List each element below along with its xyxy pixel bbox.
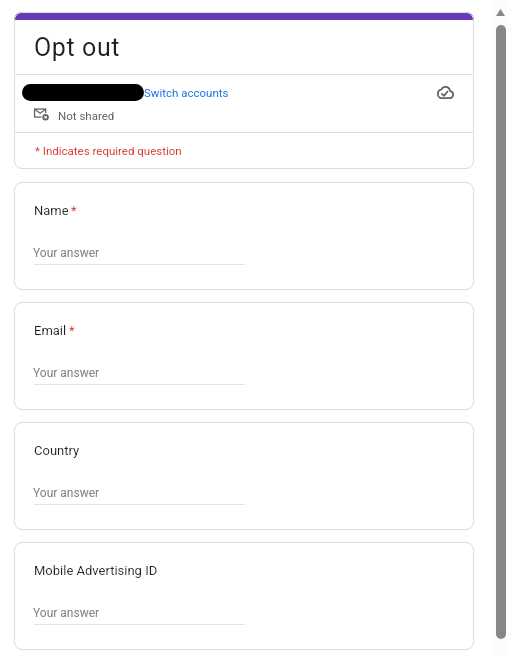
- staticText: *: [69, 323, 75, 338]
- button[interactable]: Scroll up: [493, 4, 508, 20]
- button[interactable]: Saved to Drive: [429, 76, 461, 108]
- button[interactable]: Email: [14, 302, 474, 410]
- staticText: Your answer: [33, 486, 100, 500]
- staticText: Your answer: [33, 606, 100, 620]
- button[interactable]: Your answer: [33, 234, 245, 265]
- staticText: *: [71, 203, 77, 218]
- staticText: Opt out: [34, 33, 121, 62]
- other: Scroll position: [496, 25, 506, 639]
- button[interactable]: Name: [14, 182, 474, 290]
- staticText: Switch accounts: [144, 86, 229, 99]
- staticText: * Indicates required question: [35, 144, 182, 157]
- staticText: Not shared: [58, 109, 115, 122]
- button[interactable]: Switch accounts: [144, 84, 229, 101]
- button[interactable]: Your answer: [33, 474, 245, 505]
- button[interactable]: Your answer: [33, 594, 245, 625]
- staticText: Your answer: [33, 246, 100, 260]
- staticText: Email: [34, 323, 67, 338]
- button[interactable]: Mobile Advertising ID: [14, 542, 474, 650]
- button[interactable]: Your answer: [33, 354, 245, 385]
- staticText: Country: [34, 443, 80, 458]
- staticText: Mobile Advertising ID: [34, 563, 158, 578]
- staticText: Your answer: [33, 366, 100, 380]
- button[interactable]: Country: [14, 422, 474, 530]
- staticText: Name: [34, 203, 69, 218]
